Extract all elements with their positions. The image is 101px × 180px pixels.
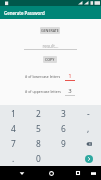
staticText: 1	[65, 72, 75, 80]
button[interactable]: 1	[0, 105, 26, 121]
staticText: .	[12, 153, 15, 164]
staticText: 5	[36, 123, 41, 134]
staticText: 7	[11, 138, 16, 149]
button[interactable]: 9	[51, 136, 76, 151]
button[interactable]: Enter	[85, 155, 93, 163]
button[interactable]: # of uppercase letters	[25, 89, 61, 94]
button[interactable]: .	[0, 151, 26, 166]
staticText: 2	[36, 108, 41, 119]
staticText: ,	[87, 123, 90, 134]
button[interactable]: 0	[26, 151, 51, 166]
staticText: GENERATE	[41, 28, 59, 33]
button[interactable]: Enter	[76, 151, 101, 166]
staticText: 6	[61, 123, 66, 134]
button[interactable]: Switch keyboard	[87, 166, 99, 180]
staticText: 9	[61, 138, 66, 149]
button[interactable]: 6	[51, 121, 76, 136]
staticText: result...	[24, 43, 77, 49]
staticText: COPY	[45, 57, 55, 62]
staticText: Generate Password	[4, 10, 45, 16]
button[interactable]: Back	[14, 166, 30, 180]
button[interactable]: -	[76, 105, 101, 121]
button[interactable]: Home	[43, 166, 59, 180]
button[interactable]: 5	[26, 121, 51, 136]
button[interactable]: 4	[0, 121, 26, 136]
button[interactable]: Backspace	[76, 136, 101, 151]
button[interactable]: 3	[51, 105, 76, 121]
staticText: 0	[36, 153, 41, 164]
button[interactable]: GENERATE	[40, 27, 60, 34]
button[interactable]: Recent apps	[70, 166, 86, 180]
other: Backspace	[86, 141, 92, 147]
button[interactable]: ,	[76, 121, 101, 136]
button[interactable]: 8	[26, 136, 51, 151]
staticText: 4	[11, 123, 16, 134]
staticText: -	[87, 108, 90, 119]
staticText: 1	[11, 108, 16, 119]
staticText: 3	[65, 87, 75, 95]
button[interactable]: COPY	[43, 56, 57, 63]
staticText: 3	[61, 108, 66, 119]
staticText: 8	[36, 138, 41, 149]
button[interactable]: 7	[0, 136, 26, 151]
button[interactable]: # of lowercase letters	[25, 74, 61, 79]
button[interactable]: 2	[26, 105, 51, 121]
